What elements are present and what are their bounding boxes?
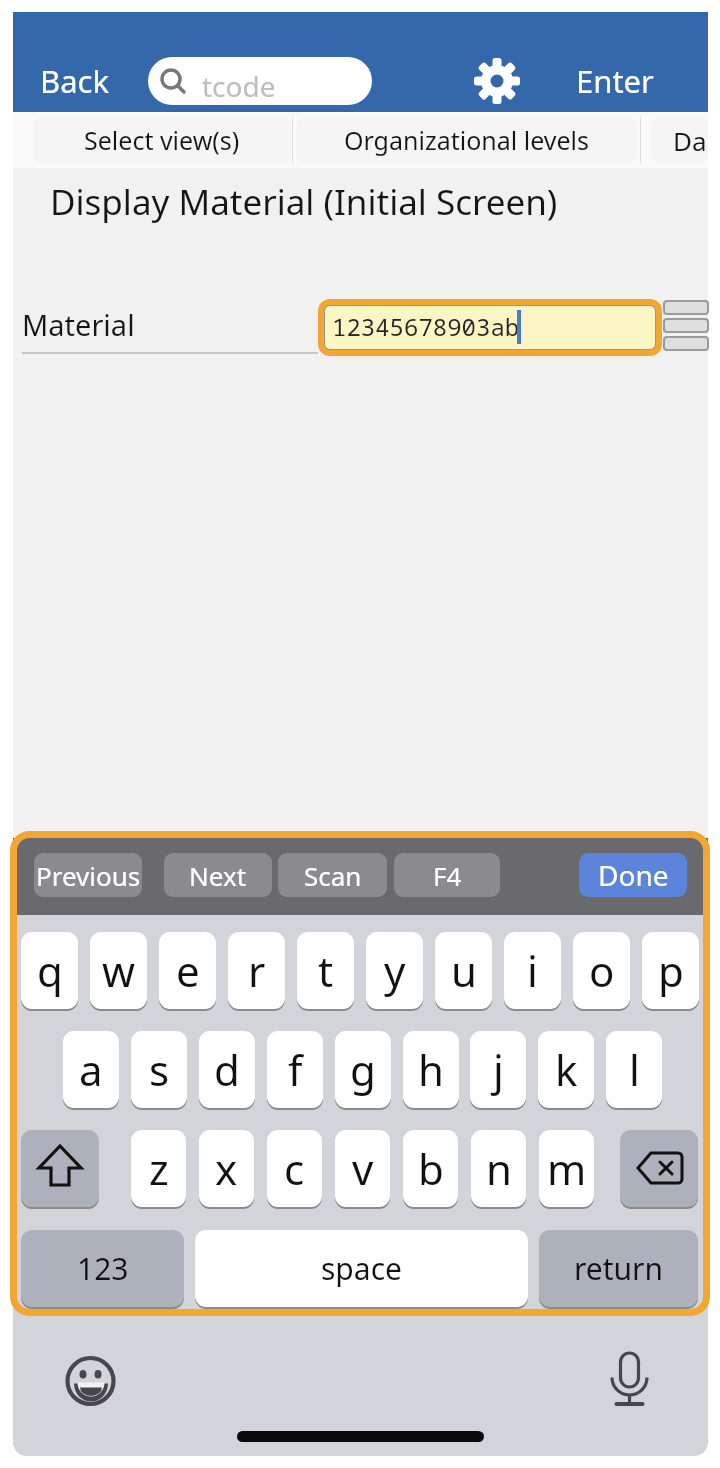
button[interactable]: Previous — [34, 853, 142, 897]
staticText: v — [352, 1140, 374, 1197]
staticText: return — [574, 1248, 664, 1289]
button[interactable]: s — [131, 1031, 187, 1108]
button[interactable]: v — [335, 1130, 390, 1207]
staticText: h — [418, 1041, 444, 1098]
button[interactable] — [21, 1130, 99, 1207]
button[interactable]: j — [470, 1031, 526, 1108]
button[interactable]: k — [538, 1031, 594, 1108]
button[interactable]: g — [335, 1031, 391, 1108]
staticText: k — [555, 1041, 578, 1098]
button[interactable]: q — [21, 932, 78, 1009]
button[interactable]: y — [366, 932, 423, 1009]
staticText: j — [493, 1041, 504, 1098]
staticText: n — [486, 1140, 512, 1197]
staticText: g — [350, 1041, 376, 1098]
button[interactable]: return — [539, 1230, 698, 1307]
staticText: m — [547, 1140, 587, 1197]
staticText: Select view(s) — [84, 123, 240, 157]
staticText: d — [214, 1041, 240, 1098]
staticText: 12345678903ab — [332, 310, 520, 343]
staticText: b — [418, 1140, 444, 1197]
button[interactable]: u — [435, 932, 492, 1009]
staticText: Back — [40, 60, 109, 102]
button[interactable]: Enter — [570, 58, 660, 104]
button[interactable]: o — [573, 932, 630, 1009]
staticText: Next — [189, 858, 247, 893]
staticText: s — [149, 1041, 170, 1098]
button[interactable]: d — [199, 1031, 255, 1108]
button[interactable]: m — [539, 1130, 594, 1207]
staticText: o — [589, 942, 615, 999]
staticText: z — [149, 1140, 169, 1197]
staticText: i — [527, 942, 538, 999]
button[interactable]: a — [63, 1031, 119, 1108]
staticText: u — [451, 942, 477, 999]
staticText: e — [176, 942, 200, 999]
staticText: F4 — [433, 858, 462, 893]
button[interactable]: i — [504, 932, 561, 1009]
button[interactable] — [65, 1355, 117, 1407]
staticText: 123 — [77, 1248, 129, 1289]
staticText: p — [658, 942, 684, 999]
staticText: Organizational levels — [344, 123, 589, 157]
button[interactable]: Organizational levels — [296, 117, 637, 163]
button[interactable]: Select view(s) — [33, 117, 291, 163]
button[interactable]: n — [471, 1130, 526, 1207]
staticText: Da — [673, 123, 707, 158]
button[interactable] — [664, 301, 708, 353]
staticText: Display Material (Initial Screen) — [50, 178, 558, 226]
button[interactable]: t — [297, 932, 354, 1009]
button[interactable]: space — [195, 1230, 528, 1307]
staticText: x — [215, 1140, 238, 1197]
staticText: Scan — [304, 858, 362, 893]
staticText: q — [37, 942, 63, 999]
staticText: tcode — [202, 67, 276, 105]
button[interactable]: Da — [651, 117, 708, 163]
staticText: Material — [22, 305, 135, 344]
staticText: c — [284, 1140, 305, 1197]
button[interactable]: h — [403, 1031, 459, 1108]
button[interactable]: e — [159, 932, 216, 1009]
button[interactable]: r — [228, 932, 285, 1009]
staticText: f — [288, 1041, 303, 1098]
button[interactable] — [608, 1348, 652, 1408]
staticText: w — [102, 942, 136, 999]
button[interactable]: 123 — [21, 1230, 184, 1307]
button[interactable] — [325, 306, 655, 349]
staticText: Done — [598, 856, 669, 894]
button[interactable] — [148, 57, 372, 105]
button[interactable] — [473, 57, 521, 105]
staticText: Previous — [36, 858, 141, 893]
staticText: Enter — [576, 60, 654, 102]
staticText: r — [248, 942, 266, 999]
button[interactable]: Scan — [278, 853, 387, 897]
button[interactable]: b — [403, 1130, 458, 1207]
button[interactable]: w — [90, 932, 147, 1009]
staticText: y — [384, 942, 406, 999]
button[interactable]: Done — [579, 853, 687, 897]
staticText: space — [321, 1248, 402, 1289]
button[interactable]: z — [131, 1130, 186, 1207]
button[interactable]: Back — [40, 58, 120, 104]
button[interactable]: p — [642, 932, 699, 1009]
staticText: t — [318, 942, 334, 999]
button[interactable]: f — [267, 1031, 323, 1108]
button[interactable]: l — [606, 1031, 662, 1108]
button[interactable] — [620, 1130, 698, 1207]
staticText: a — [79, 1041, 103, 1098]
button[interactable]: x — [199, 1130, 254, 1207]
button[interactable]: c — [267, 1130, 322, 1207]
button[interactable]: Next — [164, 853, 272, 897]
button[interactable]: F4 — [394, 853, 500, 897]
staticText: l — [629, 1041, 640, 1098]
